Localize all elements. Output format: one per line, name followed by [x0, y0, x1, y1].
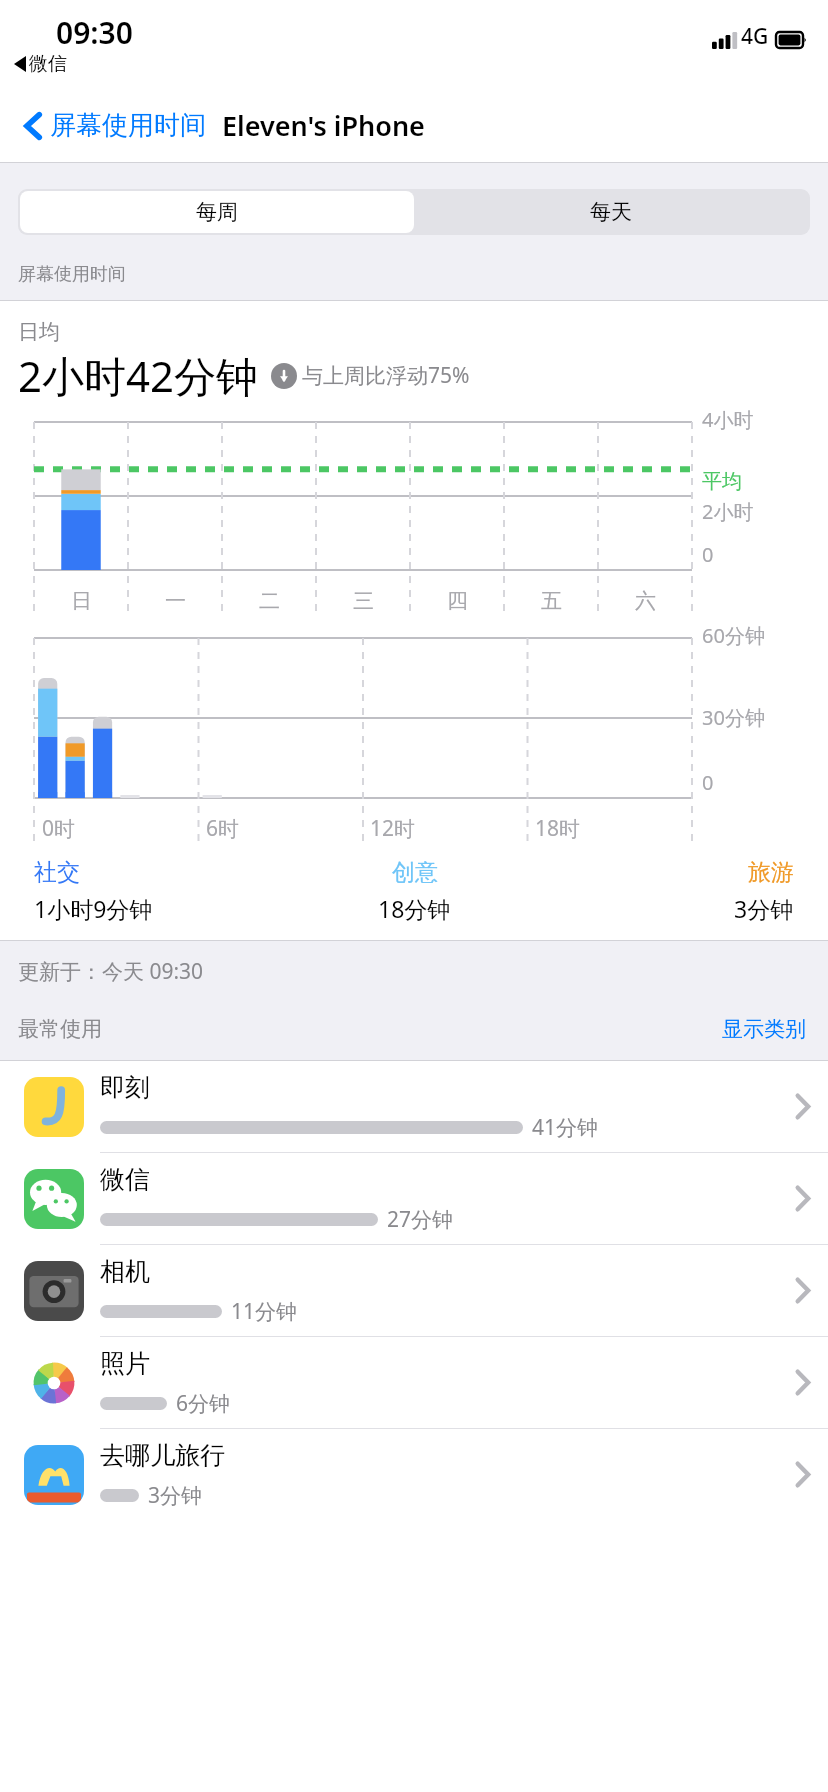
- staticText: 微信: [100, 1164, 150, 1195]
- staticText: 2小时42分钟: [18, 347, 259, 404]
- staticText: 日均: [18, 319, 60, 345]
- staticText: 社交: [34, 858, 80, 887]
- staticText: 60分钟: [702, 622, 765, 649]
- staticText: 与上周比浮动75%: [302, 361, 470, 390]
- staticText: 更新于：今天 09:30: [18, 957, 204, 986]
- staticText: 最常使用: [18, 1016, 102, 1042]
- staticText: 18时: [535, 814, 581, 843]
- staticText: 09:30: [56, 12, 133, 53]
- staticText: 四: [447, 588, 468, 614]
- staticText: 每天: [590, 199, 632, 225]
- button[interactable]: 相机: [0, 1245, 828, 1336]
- button[interactable]: 照片: [0, 1337, 828, 1428]
- staticText: 平均: [702, 469, 742, 494]
- staticText: 3分钟: [148, 1481, 203, 1510]
- staticText: 0: [702, 769, 714, 796]
- staticText: 18分钟: [378, 893, 451, 924]
- staticText: 一: [165, 588, 186, 614]
- staticText: 4小时: [702, 406, 754, 433]
- button[interactable]: 去哪儿旅行: [0, 1429, 828, 1520]
- staticText: 照片: [100, 1348, 150, 1379]
- staticText: Eleven's iPhone: [222, 107, 425, 144]
- staticText: 屏幕使用时间: [18, 263, 126, 286]
- staticText: 0: [702, 541, 714, 568]
- staticText: 27分钟: [387, 1205, 454, 1234]
- staticText: 41分钟: [532, 1113, 599, 1142]
- staticText: 日: [71, 588, 92, 614]
- staticText: 每周: [196, 199, 238, 225]
- staticText: 微信: [29, 52, 67, 76]
- staticText: 相机: [100, 1256, 150, 1287]
- staticText: 6时: [206, 814, 240, 843]
- staticText: 12时: [370, 814, 416, 843]
- button[interactable]: 每天: [414, 191, 808, 233]
- staticText: 即刻: [100, 1072, 150, 1103]
- button[interactable]: 微信: [0, 1153, 828, 1244]
- button[interactable]: 即刻: [0, 1061, 828, 1152]
- staticText: 去哪儿旅行: [100, 1440, 225, 1471]
- staticText: 6分钟: [176, 1389, 231, 1418]
- staticText: 创意: [392, 858, 438, 887]
- button[interactable]: 显示类别: [718, 1012, 810, 1046]
- staticText: 4G: [741, 22, 769, 51]
- staticText: 显示类别: [722, 1016, 806, 1042]
- staticText: 0时: [42, 814, 76, 843]
- staticText: 2小时: [702, 498, 754, 525]
- staticText: 三: [353, 588, 374, 614]
- staticText: 3分钟: [734, 893, 794, 924]
- staticText: 1小时9分钟: [34, 893, 153, 924]
- staticText: 30分钟: [702, 704, 765, 731]
- button[interactable]: 每周: [20, 191, 414, 233]
- staticText: 旅游: [748, 858, 794, 887]
- staticText: 屏幕使用时间: [50, 109, 206, 142]
- button[interactable]: 返回 屏幕使用时间: [18, 103, 212, 148]
- staticText: 五: [541, 588, 562, 614]
- staticText: 二: [259, 588, 280, 614]
- staticText: 六: [635, 588, 656, 614]
- staticText: 11分钟: [231, 1297, 298, 1326]
